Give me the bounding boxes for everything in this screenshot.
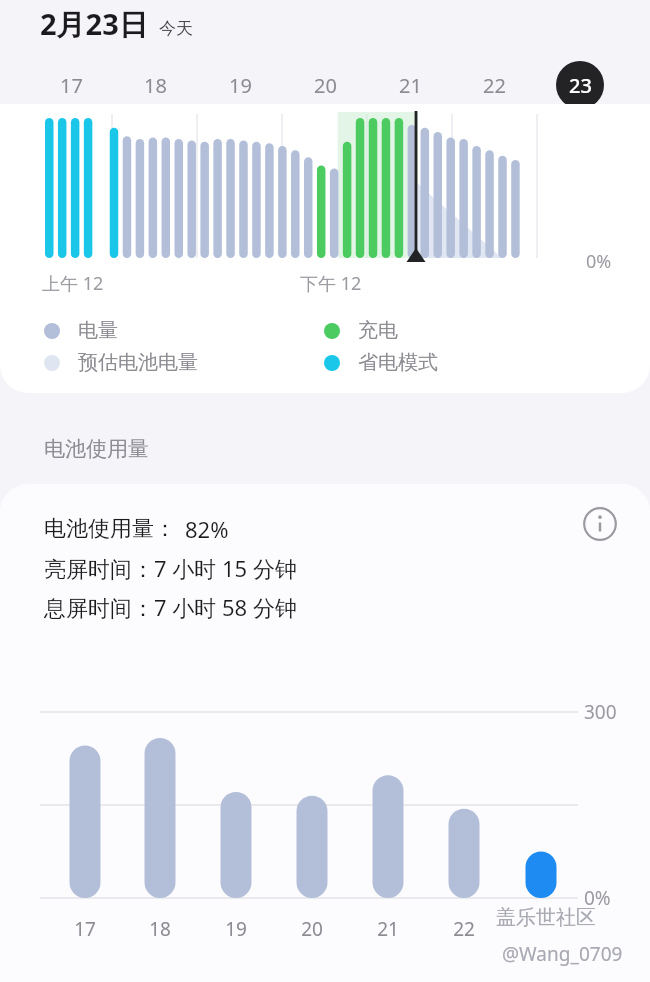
button[interactable]: 22: [468, 59, 520, 111]
button[interactable]: 23: [554, 59, 606, 111]
staticText: 电池使用量: [44, 436, 149, 462]
staticText: 21: [399, 72, 422, 99]
staticText: 电池使用量：: [44, 515, 176, 543]
staticText: 0%: [586, 249, 612, 274]
button[interactable]: 17: [45, 59, 97, 111]
staticText: 17: [74, 916, 96, 942]
button[interactable]: 21: [384, 59, 436, 111]
staticText: 亮屏时间：7 小时 15 分钟: [44, 553, 297, 583]
button[interactable]: 电量: [44, 318, 118, 343]
button[interactable]: 上午 12: [0, 104, 650, 393]
staticText: 82%: [185, 514, 229, 544]
staticText: 20: [314, 72, 337, 99]
button[interactable]: 充电: [324, 318, 398, 343]
staticText: 19: [229, 72, 252, 99]
staticText: 300: [584, 699, 617, 725]
staticText: 预估电池电量: [78, 350, 198, 375]
button[interactable]: 20: [299, 59, 351, 111]
button[interactable]: 预估电池电量: [44, 350, 198, 375]
staticText: 下午 12: [300, 271, 362, 296]
button[interactable]: 17: [63, 914, 107, 944]
staticText: 18: [144, 72, 167, 99]
staticText: 18: [149, 916, 171, 942]
staticText: 23: [569, 72, 592, 99]
button[interactable]: Battery usage information: [578, 502, 622, 546]
button[interactable]: 21: [366, 914, 410, 944]
button[interactable]: 省电模式: [324, 350, 438, 375]
staticText: 2月23日: [40, 4, 148, 44]
button[interactable]: 18: [138, 914, 182, 944]
button[interactable]: 19: [214, 59, 266, 111]
staticText: 19: [225, 916, 247, 942]
staticText: 上午 12: [42, 271, 104, 296]
staticText: 省电模式: [358, 350, 438, 375]
button[interactable]: 20: [290, 914, 334, 944]
button[interactable]: 19: [214, 914, 258, 944]
staticText: 今天: [159, 18, 193, 39]
staticText: @Wang_0709: [502, 941, 623, 967]
staticText: 20: [301, 916, 323, 942]
staticText: 盖乐世社区: [496, 905, 596, 930]
staticText: 17: [60, 72, 83, 99]
staticText: 22: [483, 72, 506, 99]
staticText: 息屏时间：7 小时 58 分钟: [44, 592, 297, 622]
staticText: 21: [377, 916, 399, 942]
staticText: 0%: [584, 885, 611, 911]
staticText: 22: [453, 916, 475, 942]
button[interactable]: 18: [129, 59, 181, 111]
staticText: 电量: [78, 318, 118, 343]
staticText: 充电: [358, 318, 398, 343]
button[interactable]: 22: [442, 914, 486, 944]
